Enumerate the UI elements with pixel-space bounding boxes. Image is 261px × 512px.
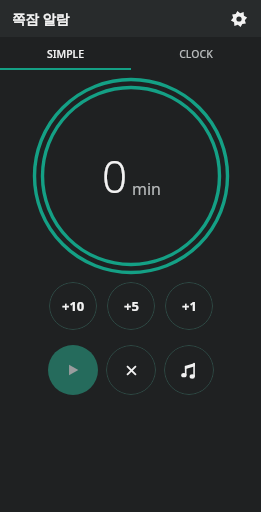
staticText: 쪽잠 알람 [12,10,70,28]
button[interactable]: Settings [225,5,253,33]
button[interactable]: +1 [165,282,213,330]
staticText: min [132,178,161,200]
staticText: +5 [124,297,139,315]
button[interactable]: SIMPLE [0,37,130,70]
staticText: 0 [102,146,128,206]
button[interactable]: Sound [164,345,214,395]
staticText: CLOCK [179,47,213,61]
button[interactable]: +10 [49,282,97,330]
button[interactable]: +5 [107,282,155,330]
staticText: +1 [182,297,197,315]
button[interactable]: 0 [31,76,231,276]
button[interactable]: Cancel [106,345,156,395]
staticText: SIMPLE [47,47,84,61]
button[interactable]: CLOCK [130,37,261,70]
button[interactable]: Start [48,345,98,395]
staticText: +10 [62,297,85,315]
